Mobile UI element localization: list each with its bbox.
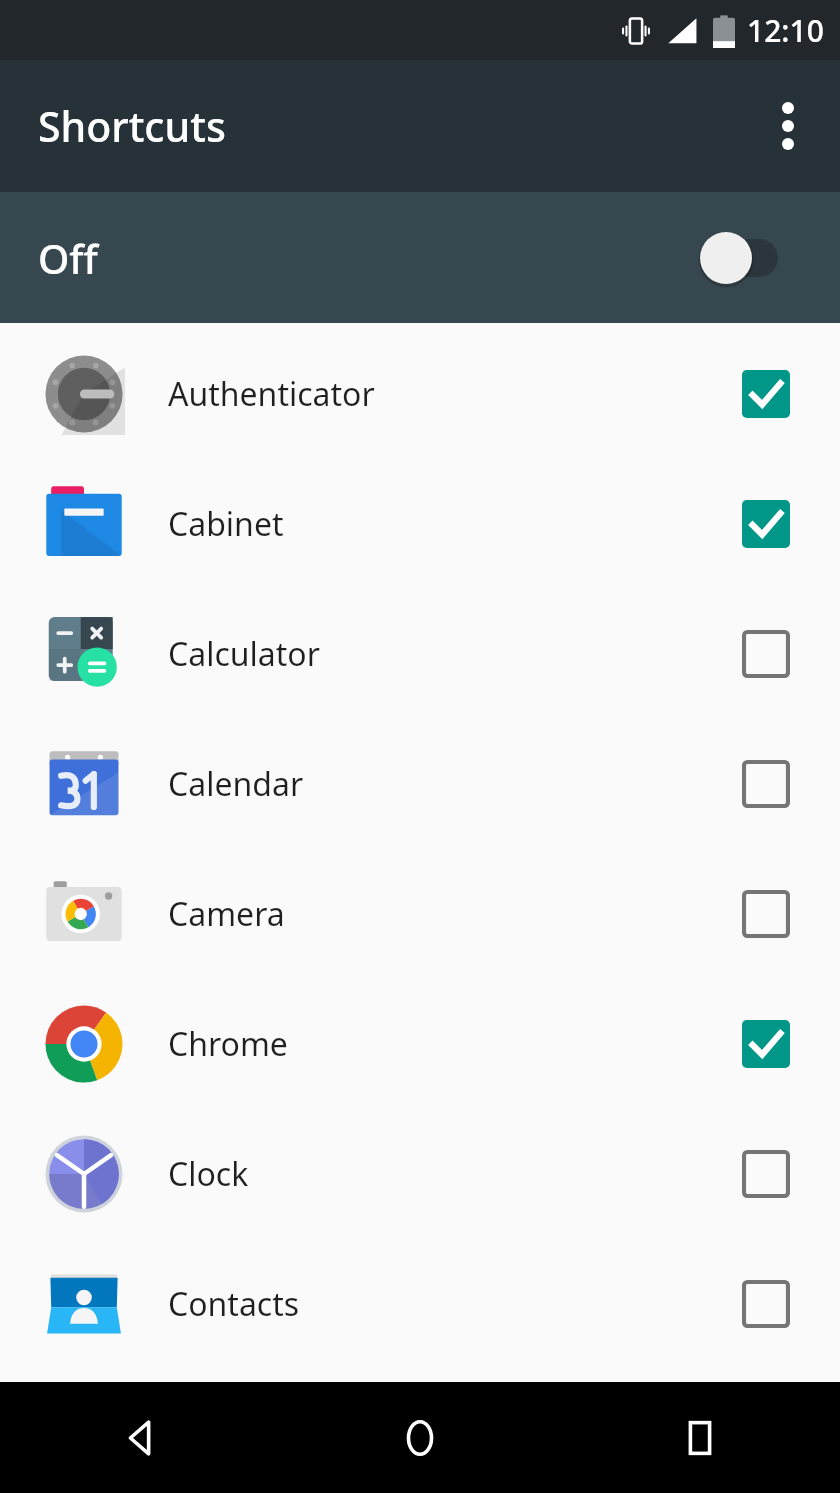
button[interactable]: Camera [0,849,840,979]
button[interactable]: Home [280,1382,560,1493]
staticText: Calendar [168,762,742,806]
button[interactable]: Calendar [0,719,840,849]
staticText: Cabinet [168,502,742,546]
staticText: Shortcuts [38,98,226,154]
button[interactable]: Contacts [0,1239,840,1369]
staticText: Chrome [168,1022,742,1066]
button[interactable]: More options [756,94,820,158]
button[interactable]: Calculator [0,589,840,719]
button[interactable]: Cabinet [0,459,840,589]
button[interactable]: Authenticator [0,329,840,459]
staticText: Clock [168,1152,742,1196]
staticText: Off [38,231,98,285]
staticText: Contacts [168,1282,742,1326]
button[interactable]: Enable shortcuts [700,226,796,290]
button[interactable]: Recents [560,1382,840,1493]
staticText: 12:10 [747,10,824,51]
button[interactable]: Chrome [0,979,840,1109]
staticText: Authenticator [168,372,742,416]
button[interactable]: Off [0,192,840,323]
button[interactable]: Back [0,1382,280,1493]
button[interactable]: Clock [0,1109,840,1239]
staticText: Calculator [168,632,742,676]
staticText: Camera [168,892,742,936]
